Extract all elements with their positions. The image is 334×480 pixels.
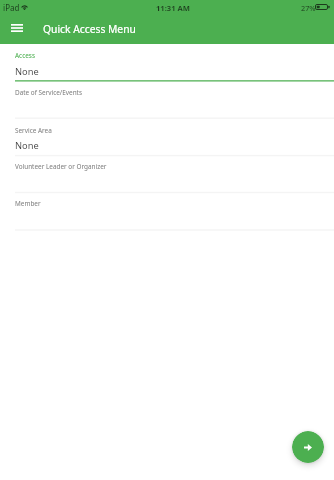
staticText: None [15, 65, 39, 78]
staticText: iPad [3, 2, 20, 13]
staticText: 11:31 AM [156, 3, 190, 13]
staticText: 27% [301, 3, 316, 13]
staticText: Quick Access Menu [43, 22, 136, 36]
button[interactable] [0, 81, 334, 118]
staticText: Date of Service/Events [15, 88, 82, 97]
button[interactable]: Open navigation menu [5, 16, 28, 39]
staticText: Member [15, 199, 41, 208]
button[interactable] [0, 44, 334, 81]
button[interactable]: Next [292, 431, 324, 463]
staticText: None [15, 139, 39, 152]
staticText: Volunteer Leader or Organizer [15, 162, 107, 171]
button[interactable] [0, 156, 334, 193]
button[interactable] [0, 119, 334, 156]
staticText: Access [15, 51, 35, 60]
staticText: Service Area [15, 126, 52, 135]
button[interactable] [0, 193, 334, 230]
